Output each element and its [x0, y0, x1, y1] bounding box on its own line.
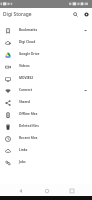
button[interactable]: Videos: [0, 60, 92, 72]
button[interactable]: Recents: [66, 185, 77, 196]
button[interactable]: Recent files: [0, 132, 92, 144]
staticText: MOVIES2: [19, 76, 34, 80]
staticText: Digi Cloud: [19, 40, 36, 44]
staticText: Google Drive: [19, 52, 40, 56]
button[interactable]: Offline files: [0, 108, 92, 120]
button[interactable]: Home: [41, 185, 52, 196]
button[interactable]: Back: [15, 185, 26, 196]
button[interactable]: Jobs: [0, 156, 92, 168]
button[interactable]: Deleted files: [0, 120, 92, 132]
staticText: Shared: [19, 100, 31, 104]
button[interactable]: Digi Cloud: [0, 36, 92, 48]
staticText: Recent files: [19, 136, 38, 140]
button[interactable]: Bookmarks: [0, 24, 92, 36]
staticText: Videos: [19, 64, 30, 68]
staticText: Digi Storage: [3, 11, 32, 18]
button[interactable]: Search: [70, 9, 81, 20]
button[interactable]: Settings: [81, 9, 92, 20]
button[interactable]: Shared: [0, 96, 92, 108]
button[interactable]: Google Drive: [0, 48, 92, 60]
staticText: Deleted files: [19, 124, 39, 128]
button[interactable]: Connect: [0, 84, 92, 96]
staticText: Offline files: [19, 112, 38, 116]
button[interactable]: MOVIES2: [0, 72, 92, 84]
staticText: Bookmarks: [19, 28, 38, 32]
button[interactable]: Links: [0, 144, 92, 156]
staticText: Links: [19, 148, 28, 152]
staticText: Jobs: [19, 160, 26, 164]
staticText: Connect: [19, 88, 33, 92]
